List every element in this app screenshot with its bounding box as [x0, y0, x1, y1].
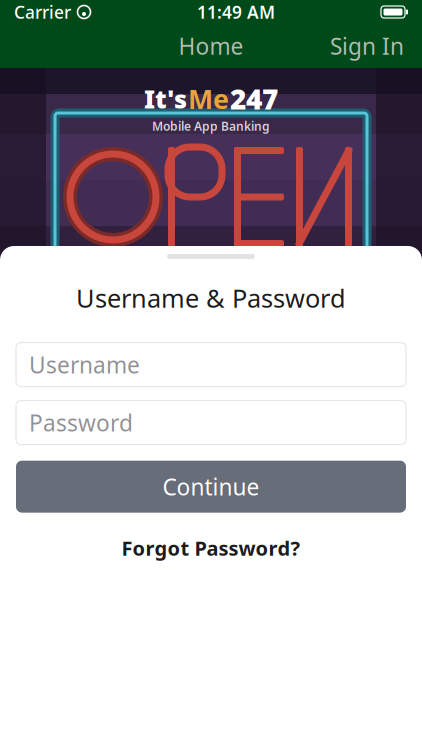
staticText: Forgot Password?	[121, 535, 300, 561]
button[interactable]: Forgot Password?	[105, 525, 316, 571]
staticText: 11:49 AM	[197, 0, 275, 23]
staticText: Password	[29, 408, 133, 438]
staticText: Sign In	[330, 31, 404, 61]
button[interactable]: Continue	[0, 461, 422, 513]
staticText: Continue	[162, 472, 259, 502]
staticText: Carrier	[14, 0, 71, 23]
staticText: Username & Password	[76, 281, 346, 315]
staticText: Home	[178, 31, 243, 61]
staticText: Mobile App Banking	[152, 118, 270, 134]
button[interactable]: Home	[178, 31, 243, 61]
button[interactable]: Sign In	[316, 23, 418, 69]
staticText: Me	[188, 81, 229, 116]
staticText: It's	[144, 82, 187, 115]
staticText: 247	[230, 80, 278, 117]
staticText: Username	[29, 350, 140, 380]
